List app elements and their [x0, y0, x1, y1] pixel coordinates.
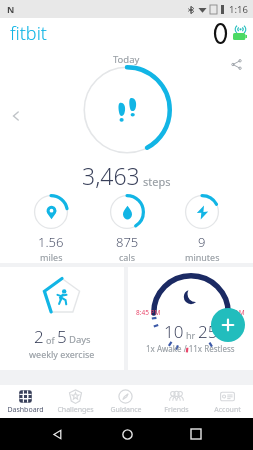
staticText: Account: [214, 405, 241, 415]
button[interactable]: Battery: [233, 26, 247, 40]
button[interactable]: Steps ring: [82, 65, 172, 155]
staticText: Friends: [164, 405, 189, 415]
button[interactable]: Dashboard: [0, 385, 50, 418]
button[interactable]: Add: [211, 308, 245, 342]
staticText: of: [46, 334, 55, 346]
staticText: Guidance: [110, 405, 142, 415]
staticText: weekly exercise: [29, 348, 95, 360]
button[interactable]: Back: [44, 421, 70, 447]
staticText: 8:45 PM: [136, 308, 161, 317]
button[interactable]: Tracker: [209, 22, 231, 44]
staticText: 1x Awake / 11x Restless: [146, 343, 235, 354]
button[interactable]: Account: [202, 385, 253, 418]
staticText: 7:32 AM: [220, 308, 245, 317]
staticText: 10: [164, 320, 184, 343]
staticText: 9: [198, 233, 206, 251]
button[interactable]: 2: [0, 267, 124, 370]
staticText: 5: [57, 325, 67, 348]
button[interactable]: 9: [178, 194, 226, 263]
staticText: 25: [198, 320, 218, 343]
staticText: fitbit: [10, 21, 47, 46]
staticText: Days: [69, 333, 91, 346]
staticText: minutes: [185, 251, 220, 263]
staticText: steps: [143, 174, 171, 189]
staticText: 2: [34, 325, 44, 348]
button[interactable]: Home: [114, 421, 140, 447]
button[interactable]: Share: [225, 53, 247, 75]
button[interactable]: 8:45 PM: [128, 267, 253, 370]
button[interactable]: Recents: [183, 421, 209, 447]
button[interactable]: 1.56: [27, 194, 75, 263]
button[interactable]: Friends: [151, 385, 202, 418]
staticText: 3,463: [82, 160, 140, 191]
staticText: 1.56: [38, 233, 64, 251]
staticText: cals: [119, 251, 136, 263]
staticText: miles: [40, 251, 63, 263]
staticText: Challenges: [57, 405, 94, 415]
button[interactable]: Challenges: [50, 385, 100, 418]
button[interactable]: Guidance: [100, 385, 151, 418]
button[interactable]: 875: [103, 194, 151, 263]
staticText: 875: [116, 233, 139, 251]
staticText: Dashboard: [7, 405, 44, 415]
staticText: N: [7, 3, 15, 15]
staticText: Today: [113, 53, 140, 66]
staticText: hr: [186, 329, 196, 341]
staticText: 1:16: [229, 3, 248, 16]
